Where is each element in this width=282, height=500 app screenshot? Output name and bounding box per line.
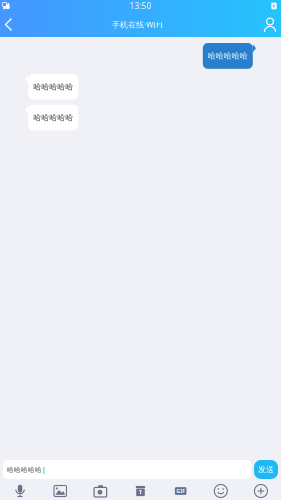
button[interactable]: Gift [120, 484, 160, 497]
staticText: 哈哈哈哈哈 [33, 113, 73, 122]
staticText: 13:50 [129, 1, 151, 11]
staticText: 哈哈哈哈哈 [33, 82, 73, 92]
button[interactable]: Emoji [201, 484, 241, 497]
button[interactable]: Voice message [0, 484, 40, 498]
button[interactable]: Contact info [254, 12, 281, 37]
button[interactable]: 发送 [254, 460, 278, 479]
staticText: 哈哈哈哈哈 [208, 51, 248, 61]
button[interactable]: Camera [80, 484, 120, 497]
button[interactable]: Back [0, 12, 21, 37]
button[interactable]: GIF [161, 487, 201, 495]
staticText: 发送 [258, 465, 274, 474]
staticText: GIF [176, 487, 185, 495]
staticText: 手机在线·WIFI [112, 19, 163, 30]
button[interactable]: More [241, 484, 281, 497]
staticText: 哈哈哈哈哈| [7, 465, 46, 474]
button[interactable]: Photos [40, 484, 80, 497]
